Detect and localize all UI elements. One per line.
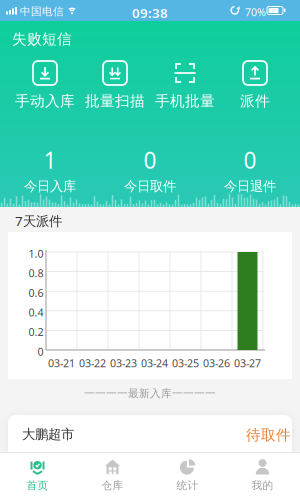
staticText: 03-27 <box>234 356 261 370</box>
staticText: 0 <box>243 145 256 175</box>
staticText: 03-24 <box>141 356 168 370</box>
button[interactable]: 派件 <box>220 61 290 110</box>
button[interactable]: 批量扫描 <box>80 61 150 110</box>
staticText: 一一一一最新入库一一一一 <box>84 387 216 400</box>
staticText: 09:38 <box>132 4 168 22</box>
staticText: 03-23 <box>110 356 137 370</box>
staticText: 今日入库 <box>24 178 76 194</box>
staticText: 03-25 <box>172 356 199 370</box>
staticText: 我的 <box>251 479 273 492</box>
button[interactable]: 手机批量 <box>150 61 220 110</box>
staticText: 今日取件 <box>124 178 176 194</box>
staticText: 70% <box>245 5 266 19</box>
staticText: 手动入库 <box>15 92 75 110</box>
staticText: 0.2 <box>28 325 43 339</box>
staticText: 失败短信 <box>12 30 72 48</box>
button[interactable]: 统计 <box>150 458 225 492</box>
button[interactable]: 仓库 <box>75 458 150 492</box>
staticText: 手机批量 <box>155 92 215 110</box>
staticText: 1.0 <box>28 246 43 261</box>
button[interactable]: 手动入库 <box>10 61 80 110</box>
button[interactable]: 大鹏超市 <box>8 415 292 460</box>
staticText: 0.4 <box>28 305 43 319</box>
staticText: 批量扫描 <box>85 92 145 110</box>
staticText: 中国电信 <box>20 5 64 18</box>
staticText: 0 <box>143 145 156 175</box>
staticText: 0.6 <box>28 286 43 300</box>
staticText: 0.8 <box>28 266 43 280</box>
staticText: 派件 <box>240 92 270 110</box>
staticText: 仓库 <box>101 479 123 492</box>
staticText: 大鹏超市 <box>22 426 74 442</box>
staticText: 1 <box>43 145 56 175</box>
staticText: 03-21 <box>48 356 75 370</box>
staticText: 0 <box>37 344 43 359</box>
button[interactable]: 失败短信 <box>12 30 72 48</box>
staticText: 03-22 <box>79 356 106 370</box>
staticText: 今日退件 <box>224 178 276 194</box>
staticText: 首页 <box>26 479 48 492</box>
button[interactable]: 我的 <box>225 458 300 492</box>
staticText: 03-26 <box>203 356 230 370</box>
staticText: 待取件 <box>246 426 291 444</box>
staticText: 7天派件 <box>15 212 62 230</box>
staticText: 统计 <box>176 479 198 492</box>
button[interactable]: 首页 <box>0 458 75 492</box>
